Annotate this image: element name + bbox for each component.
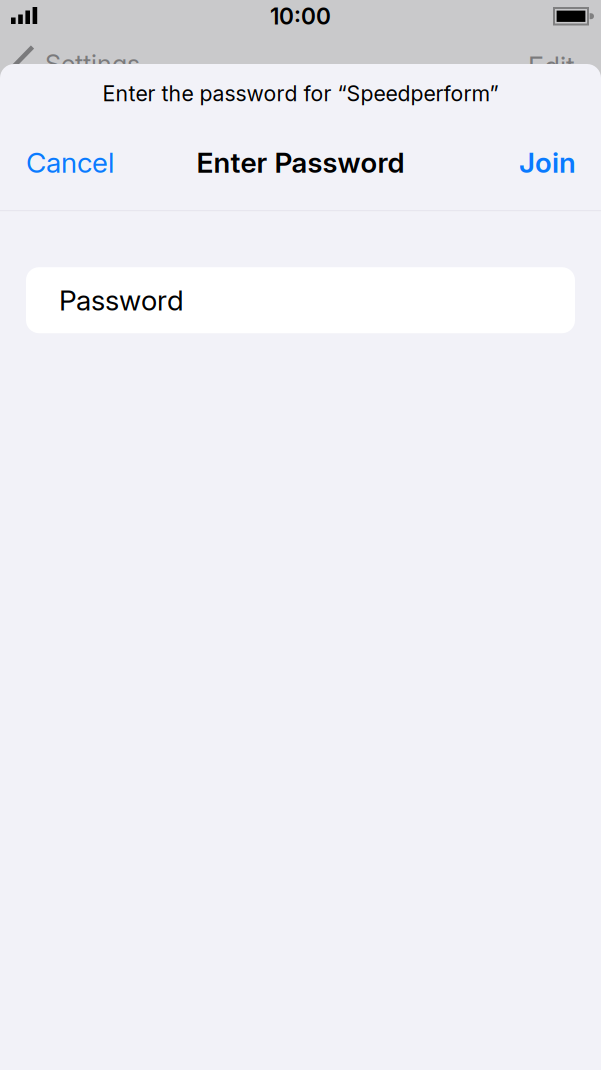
staticText: Edit <box>528 51 575 82</box>
staticText: Cancel <box>26 146 114 179</box>
staticText: Enter the password for “Speedperform” <box>102 81 498 106</box>
staticText: Settings <box>45 49 140 79</box>
staticText: Enter Password <box>196 146 404 179</box>
staticText: Join <box>519 146 576 179</box>
staticText: Password <box>59 284 184 317</box>
staticText: 10:00 <box>270 3 331 30</box>
button[interactable]: Cancel <box>26 146 114 179</box>
button[interactable]: Password <box>26 267 575 333</box>
button[interactable]: Join <box>519 146 576 179</box>
